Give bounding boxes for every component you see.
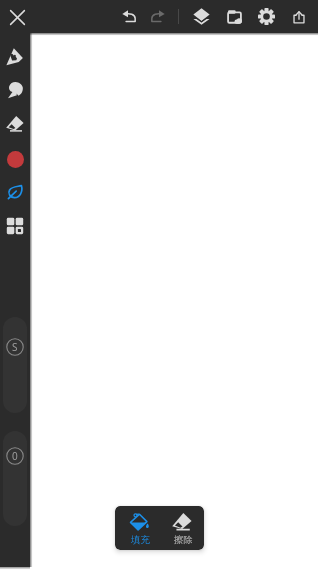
button[interactable]: Share: [286, 3, 312, 30]
button[interactable]: Opacity: [3, 431, 27, 526]
button[interactable]: Fill: [120, 506, 157, 550]
button[interactable]: Settings: [253, 3, 279, 30]
button[interactable]: Undo: [116, 3, 142, 30]
button[interactable]: Layers: [188, 3, 214, 30]
staticText: 填充: [122, 534, 159, 546]
button[interactable]: Grid: [6, 217, 24, 235]
staticText: 擦除: [165, 534, 202, 546]
button[interactable]: Close: [4, 4, 31, 31]
staticText: S: [12, 340, 18, 354]
button[interactable]: Smudge: [6, 81, 24, 99]
button[interactable]: Leaf tool: [6, 183, 24, 201]
button[interactable]: Redo: [144, 3, 170, 30]
button[interactable]: Pen: [6, 47, 24, 65]
button[interactable]: Erase: [163, 506, 200, 550]
button[interactable]: Color: [6, 150, 24, 168]
staticText: 0: [12, 449, 18, 463]
button[interactable]: Eraser: [6, 115, 24, 133]
button[interactable]: Brush size: [3, 317, 27, 413]
button[interactable]: Open file: [221, 3, 247, 30]
